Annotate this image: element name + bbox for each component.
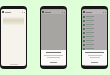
button[interactable] [82, 47, 107, 51]
button[interactable] [82, 19, 107, 23]
button[interactable] [82, 43, 107, 47]
button[interactable] [82, 63, 107, 66]
button[interactable] [82, 59, 107, 63]
button[interactable] [82, 27, 107, 31]
button[interactable] [82, 35, 107, 39]
button[interactable] [82, 23, 107, 27]
button[interactable] [82, 31, 107, 35]
button[interactable] [82, 51, 107, 55]
button[interactable] [82, 15, 107, 19]
button[interactable] [82, 55, 107, 59]
button[interactable] [82, 39, 107, 43]
